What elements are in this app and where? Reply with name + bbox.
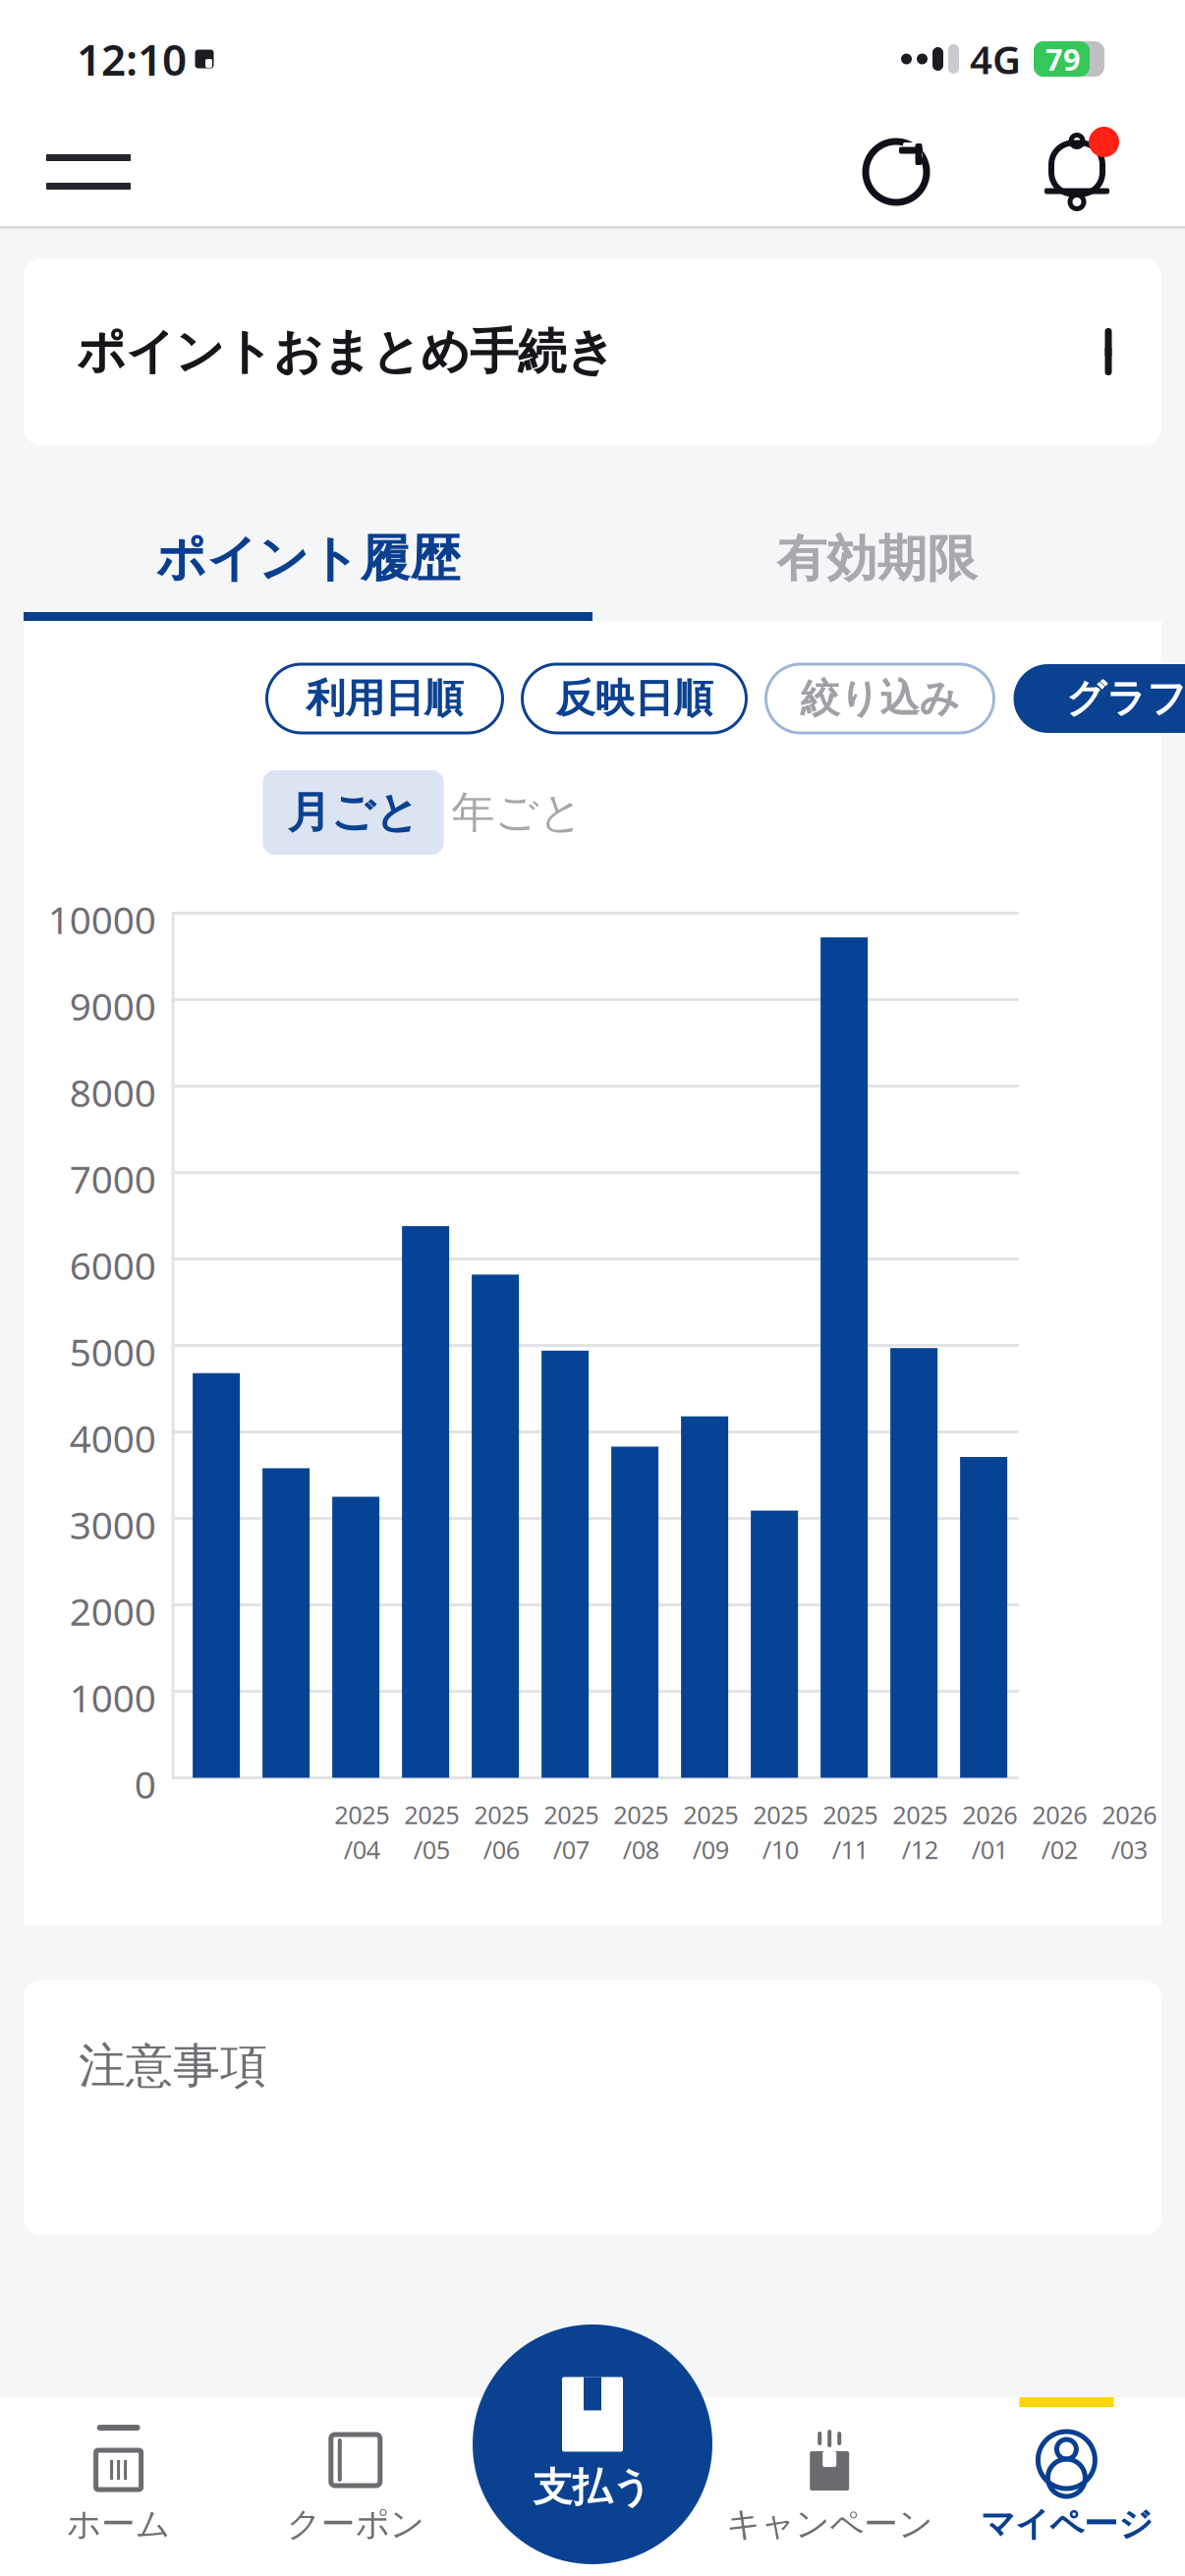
staticText: 2026	[1102, 1798, 1157, 1831]
staticText: 2025	[334, 1798, 389, 1831]
staticText: マイページ	[981, 2503, 1152, 2545]
staticText: /08	[623, 1833, 659, 1866]
button[interactable]: 支払う	[473, 2324, 712, 2564]
button[interactable]: 絞り込み	[766, 664, 994, 733]
staticText: 2025	[404, 1798, 459, 1831]
staticText: 12:10	[77, 30, 187, 88]
staticText: 4G	[970, 33, 1021, 85]
staticText: 8000	[69, 1067, 156, 1117]
staticText: 支払う	[533, 2463, 652, 2512]
staticText: ポイント履歴	[156, 528, 460, 590]
staticText: ホーム	[67, 2503, 170, 2545]
staticText: 2025	[892, 1798, 947, 1831]
button[interactable]: クーポン	[237, 2397, 474, 2576]
staticText: /06	[483, 1833, 520, 1866]
staticText: 2026	[1032, 1798, 1087, 1831]
staticText: 2025	[544, 1798, 599, 1831]
staticText: /10	[762, 1833, 799, 1866]
button[interactable]: 反映日順	[522, 664, 746, 733]
button[interactable]: ポイントおまとめ手続き	[24, 258, 1161, 445]
staticText: 2025	[823, 1798, 878, 1831]
staticText: 2025	[474, 1798, 529, 1831]
button[interactable]: キャンペーン	[711, 2397, 948, 2576]
staticText: 5000	[69, 1326, 156, 1377]
staticText: 2000	[69, 1586, 156, 1636]
button[interactable]: Refresh	[851, 125, 941, 219]
button[interactable]: Notifications	[1026, 125, 1128, 219]
staticText: 7000	[69, 1153, 156, 1204]
staticText: 79	[1045, 39, 1081, 79]
staticText: /03	[1111, 1833, 1147, 1866]
staticText: 2025	[683, 1798, 738, 1831]
staticText: 0	[134, 1759, 156, 1809]
staticText: 4000	[69, 1413, 156, 1463]
staticText: /09	[693, 1833, 729, 1866]
staticText: 利用日順	[306, 674, 463, 723]
staticText: 2026	[962, 1798, 1017, 1831]
button[interactable]: 有効期限	[592, 506, 1161, 612]
button[interactable]: ホーム	[0, 2397, 237, 2576]
staticText: 9000	[69, 980, 156, 1031]
staticText: 反映日順	[556, 674, 713, 723]
staticText: /02	[1041, 1833, 1078, 1866]
staticText: /05	[413, 1833, 450, 1866]
staticText: 絞り込み	[800, 674, 959, 723]
staticText: クーポン	[287, 2503, 424, 2545]
staticText: 注意事項	[79, 2037, 267, 2095]
staticText: 6000	[69, 1240, 156, 1290]
staticText: 有効期限	[777, 528, 977, 590]
button[interactable]: 利用日順	[267, 664, 503, 733]
staticText: 2025	[613, 1798, 668, 1831]
staticText: /04	[344, 1833, 380, 1866]
button[interactable]: Menu	[29, 125, 147, 219]
staticText: /07	[553, 1833, 589, 1866]
staticText: /12	[902, 1833, 938, 1866]
staticText: 月ごと	[287, 786, 419, 839]
staticText: 3000	[69, 1499, 156, 1550]
button[interactable]: 月ごと	[263, 770, 444, 855]
button[interactable]: マイページ	[948, 2397, 1185, 2576]
staticText: キャンペーン	[726, 2503, 933, 2545]
staticText: 1000	[69, 1672, 156, 1723]
staticText: /01	[972, 1833, 1008, 1866]
staticText: 10000	[48, 894, 156, 944]
staticText: グラフ	[1066, 674, 1185, 723]
staticText: ポイントおまとめ手続き	[77, 322, 615, 381]
staticText: /11	[832, 1833, 868, 1866]
staticText: 2025	[753, 1798, 808, 1831]
staticText: 年ごと	[451, 786, 583, 839]
button[interactable]: ポイント履歴	[24, 506, 592, 612]
button[interactable]: 年ごと	[444, 770, 591, 855]
button[interactable]: グラフ	[1014, 664, 1185, 733]
